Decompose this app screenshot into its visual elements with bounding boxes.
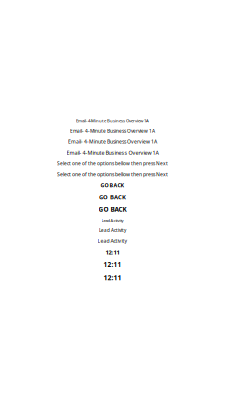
staticText: Lead Activity bbox=[99, 227, 126, 233]
staticText: Email- 4-Minute Business Overview 1A bbox=[68, 138, 157, 145]
staticText: 12:11 bbox=[103, 260, 121, 269]
staticText: Select one of the options bellow then pr… bbox=[57, 171, 168, 178]
staticText: GO BACK bbox=[100, 182, 124, 189]
staticText: 12:11 bbox=[105, 248, 119, 256]
staticText: Lead Activity bbox=[97, 237, 127, 244]
staticText: Email- 4-Minute Business Overview 1A bbox=[76, 118, 149, 123]
staticText: Select one of the options bellow then pr… bbox=[57, 160, 168, 167]
staticText: GO BACK bbox=[99, 193, 126, 201]
staticText: GO BACK bbox=[98, 205, 126, 214]
staticText: 12:11 bbox=[103, 273, 121, 282]
staticText: Email- 4-Minute Business Overview 1A bbox=[66, 149, 158, 156]
staticText: Email- 4-Minute Business Overview 1A bbox=[70, 127, 155, 134]
staticText: Lead Activity bbox=[101, 218, 123, 223]
